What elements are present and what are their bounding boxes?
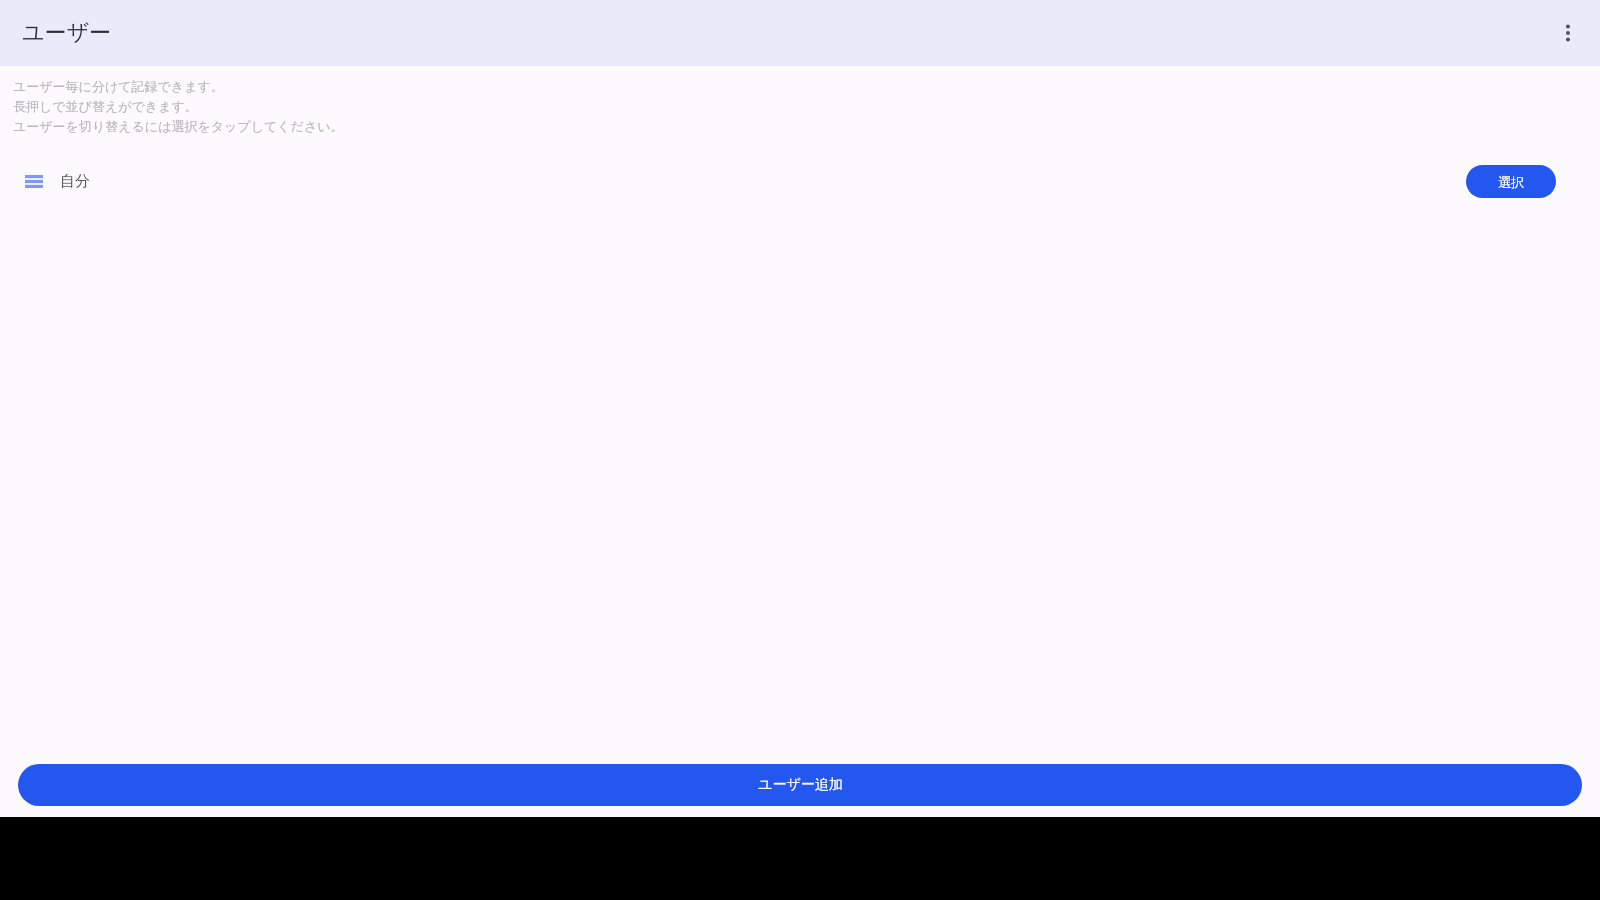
button[interactable]: 選択 — [1466, 165, 1556, 198]
staticText: ユーザー — [22, 19, 112, 47]
staticText: 選択 — [1498, 174, 1524, 190]
button[interactable]: Reorder — [0, 155, 1600, 207]
button[interactable]: ユーザー追加 — [18, 764, 1582, 806]
staticText: ユーザー追加 — [758, 776, 843, 794]
other: Reorder — [24, 171, 44, 191]
staticText: ユーザー毎に分けて記録できます。 — [13, 78, 224, 94]
staticText: ユーザーを切り替えるには選択をタップしてください。 — [13, 118, 344, 134]
staticText: 自分 — [60, 172, 90, 191]
button[interactable]: More options — [1544, 9, 1592, 57]
staticText: 長押しで並び替えができます。 — [13, 98, 198, 114]
